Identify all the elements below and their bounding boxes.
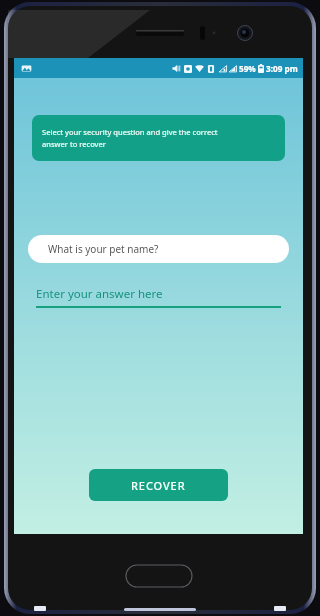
staticText: Select your security question and give t… bbox=[42, 127, 218, 150]
staticText: 59% bbox=[239, 63, 256, 74]
staticText: 3:09 pm bbox=[266, 63, 298, 74]
button[interactable]: Select your security question and give t… bbox=[32, 115, 285, 161]
button[interactable]: What is your pet name? bbox=[28, 235, 289, 263]
staticText: Enter your answer here bbox=[36, 286, 163, 302]
staticText: What is your pet name? bbox=[48, 242, 159, 256]
button[interactable]: RECOVER bbox=[89, 469, 228, 501]
staticText: RECOVER bbox=[131, 478, 186, 493]
button[interactable]: Enter your answer here bbox=[36, 286, 281, 308]
